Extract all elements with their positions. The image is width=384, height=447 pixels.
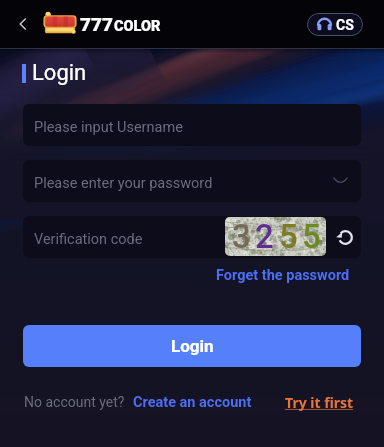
staticText: 777 (80, 13, 114, 35)
staticText: Forget the password (216, 267, 350, 283)
button[interactable]: Try it first (285, 393, 354, 411)
staticText: 2 (255, 217, 274, 256)
staticText: CS (336, 17, 354, 33)
staticText: 5 (302, 217, 321, 256)
staticText: Try it first (285, 393, 354, 411)
button[interactable]: Captcha image (225, 217, 326, 256)
staticText: Create an account (133, 394, 252, 411)
button[interactable]: Please enter your password (23, 160, 361, 202)
staticText: 5 (279, 217, 298, 256)
staticText: Login (32, 60, 87, 86)
button[interactable]: Create an account (133, 394, 252, 411)
button[interactable]: Login (23, 325, 361, 367)
button[interactable]: Please input Username (23, 104, 361, 146)
staticText: Verification code (34, 231, 143, 248)
staticText: Please enter your password (34, 175, 213, 192)
staticText: 3 (232, 217, 251, 256)
staticText: Please input Username (34, 119, 183, 136)
staticText: No account yet? (24, 394, 125, 410)
staticText: Login (171, 336, 214, 356)
staticText: COLOR (114, 18, 161, 35)
button[interactable]: Forget the password (216, 267, 350, 283)
button[interactable]: Verification code (23, 216, 361, 258)
button[interactable]: Show password (330, 171, 350, 191)
button[interactable]: Back (8, 9, 38, 39)
button[interactable]: Refresh captcha (335, 227, 356, 248)
button[interactable]: CS (307, 13, 363, 36)
